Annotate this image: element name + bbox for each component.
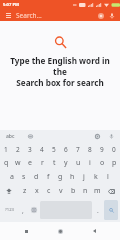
button[interactable]: p (108, 156, 120, 170)
staticText: Search... (16, 11, 42, 20)
button[interactable]: v (55, 184, 67, 198)
staticText: m (94, 186, 101, 196)
staticText: p (112, 158, 117, 168)
button[interactable]: o (96, 156, 108, 170)
button[interactable]: s (18, 170, 30, 184)
staticText: s (22, 172, 26, 182)
staticText: b (71, 186, 76, 196)
staticText: d (34, 172, 39, 182)
button[interactable]: , (18, 199, 28, 221)
staticText: z (23, 186, 27, 196)
staticText: r (41, 158, 44, 168)
staticText: x (35, 186, 39, 196)
button[interactable]: y (60, 156, 72, 170)
staticText: y (64, 158, 68, 168)
button[interactable]: g (54, 170, 66, 184)
staticText: c (47, 186, 51, 196)
staticText: ?123 (5, 207, 15, 213)
staticText: w (15, 158, 21, 168)
button[interactable]: 1 (0, 143, 12, 156)
staticText: f (47, 172, 50, 182)
button[interactable]: l (102, 170, 114, 184)
staticText: 5 (52, 145, 56, 154)
button[interactable]: Search... (16, 9, 96, 21)
staticText: q (4, 158, 9, 168)
button[interactable]: b (67, 184, 79, 198)
staticText: abc (6, 133, 15, 140)
button[interactable]: Home (52, 223, 68, 239)
button[interactable]: 7 (72, 143, 84, 156)
staticText: 4 (40, 145, 44, 154)
button[interactable]: 8 (84, 143, 96, 156)
staticText: 7 (76, 145, 80, 154)
button[interactable]: abc (4, 131, 17, 142)
button[interactable]: Menu (4, 11, 13, 20)
staticText: i (89, 158, 91, 168)
button[interactable]: x (31, 184, 43, 198)
button[interactable]: t (48, 156, 60, 170)
button[interactable]: a (6, 170, 18, 184)
button[interactable]: u (72, 156, 84, 170)
staticText: 8 (88, 145, 92, 154)
button[interactable]: Keyboard settings (93, 132, 102, 141)
button[interactable]: f (42, 170, 54, 184)
button[interactable]: m (91, 184, 103, 198)
button[interactable]: Search by image (96, 11, 105, 20)
staticText: u (76, 158, 81, 168)
button[interactable]: h (66, 170, 78, 184)
button[interactable]: 0 (108, 143, 120, 156)
button[interactable]: n (79, 184, 91, 198)
staticText: n (83, 186, 88, 196)
staticText: l (107, 172, 109, 182)
staticText: v (59, 186, 63, 196)
staticText: . (97, 206, 99, 215)
staticText: , (22, 206, 24, 215)
staticText: o (100, 158, 105, 168)
staticText: 5:07 PM (3, 2, 20, 8)
staticText: j (83, 172, 85, 182)
button[interactable]: q (0, 156, 12, 170)
button[interactable]: e (24, 156, 36, 170)
button[interactable]: Change keyboard language (28, 199, 39, 221)
button[interactable]: ?123 (1, 199, 18, 221)
button[interactable]: 5 (48, 143, 60, 156)
button[interactable]: j (78, 170, 90, 184)
button[interactable]: . (93, 199, 103, 221)
staticText: g (58, 172, 63, 182)
button[interactable]: Voice input (107, 132, 116, 141)
button[interactable]: Backspace (103, 184, 120, 198)
staticText: e (28, 158, 32, 168)
staticText: 6 (64, 145, 68, 154)
button[interactable]: r (36, 156, 48, 170)
staticText: 9 (100, 145, 104, 154)
button[interactable]: i (84, 156, 96, 170)
button[interactable]: 6 (60, 143, 72, 156)
button[interactable]: Search (104, 200, 118, 220)
staticText: 2 (16, 145, 20, 154)
staticText: 0 (112, 145, 116, 154)
button[interactable]: 9 (96, 143, 108, 156)
button[interactable]: 2 (12, 143, 24, 156)
button[interactable]: k (90, 170, 102, 184)
button[interactable]: z (18, 184, 31, 198)
staticText: 1 (4, 145, 8, 154)
staticText: a (10, 172, 14, 182)
button[interactable]: 4 (36, 143, 48, 156)
staticText: k (94, 172, 98, 182)
button[interactable]: d (30, 170, 42, 184)
staticText: Type the English word in the Search box … (6, 55, 114, 88)
button[interactable]: Recent apps (18, 223, 34, 239)
button[interactable]: Voice search (107, 11, 116, 20)
button[interactable]: c (43, 184, 55, 198)
button[interactable]: Back (86, 223, 102, 239)
button[interactable]: w (12, 156, 24, 170)
button[interactable]: Stickers (26, 132, 35, 141)
staticText: t (53, 158, 56, 168)
staticText: 3 (28, 145, 32, 154)
button[interactable]: Shift (0, 184, 18, 198)
staticText: h (70, 172, 75, 182)
button[interactable]: 3 (24, 143, 36, 156)
